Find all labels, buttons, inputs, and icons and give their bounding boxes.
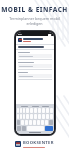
button[interactable]: Taste <box>38 114 41 119</box>
button[interactable]: Taste <box>34 114 37 119</box>
button[interactable]: Taste <box>46 114 49 119</box>
button[interactable]: Senden <box>45 126 53 131</box>
button[interactable] <box>42 106 49 107</box>
button[interactable]: Taste <box>30 108 33 113</box>
button[interactable]: Taste <box>38 108 41 113</box>
button[interactable]: Taste <box>29 120 32 125</box>
button[interactable] <box>21 106 28 107</box>
button[interactable] <box>32 106 39 107</box>
button[interactable] <box>18 72 52 80</box>
staticText: BOOKSENTER <box>23 140 54 146</box>
button[interactable]: Taste <box>26 108 29 113</box>
button[interactable]: Taste <box>23 108 25 113</box>
button[interactable]: Taste <box>30 114 33 119</box>
button[interactable]: Taste <box>26 114 29 119</box>
button[interactable]: Taste <box>23 114 25 119</box>
button[interactable]: Taste <box>37 120 40 125</box>
staticText: 9:41 <box>18 33 23 36</box>
staticText: MOBIL & EINFACH <box>1 5 68 14</box>
staticText: Terminplanner bequem mobil erledigen <box>6 16 63 26</box>
button[interactable]: Taste <box>42 108 45 113</box>
button[interactable] <box>18 62 52 70</box>
button[interactable]: Taste <box>20 108 22 113</box>
button[interactable]: Taste <box>42 114 45 119</box>
button[interactable]: Taste <box>17 108 19 113</box>
button[interactable]: Taste <box>33 120 36 125</box>
button[interactable]: Taste <box>34 108 37 113</box>
button[interactable]: Taste <box>20 114 22 119</box>
button[interactable]: Taste <box>50 114 53 119</box>
button[interactable]: Taste <box>50 108 53 113</box>
button[interactable]: Taste <box>46 108 49 113</box>
button[interactable] <box>18 38 52 42</box>
button[interactable] <box>18 52 52 60</box>
button[interactable]: Taste <box>21 120 24 125</box>
button[interactable]: Taste <box>45 120 48 125</box>
button[interactable]: 9:41 <box>16 32 54 134</box>
button[interactable]: Taste <box>25 120 28 125</box>
button[interactable]: BOOKSENTER <box>15 140 54 148</box>
button[interactable]: Taste <box>41 120 44 125</box>
button[interactable]: Taste <box>17 114 19 119</box>
